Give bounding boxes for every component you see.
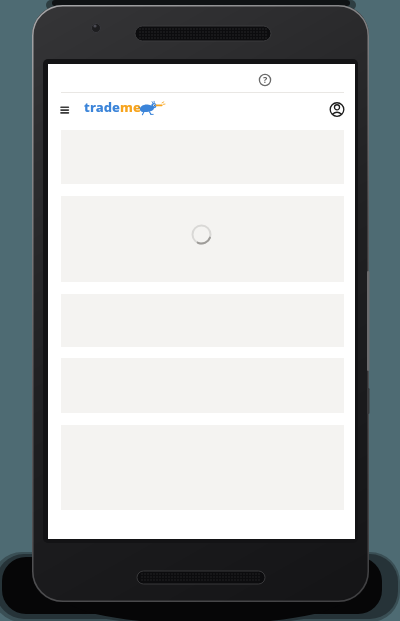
staticText: trademe xyxy=(84,98,141,116)
button[interactable]: ? xyxy=(254,69,276,91)
button[interactable] xyxy=(61,196,344,282)
button[interactable] xyxy=(54,100,74,120)
button[interactable]: trademe xyxy=(84,98,166,122)
button[interactable] xyxy=(327,99,347,119)
staticText: ? xyxy=(263,73,268,85)
